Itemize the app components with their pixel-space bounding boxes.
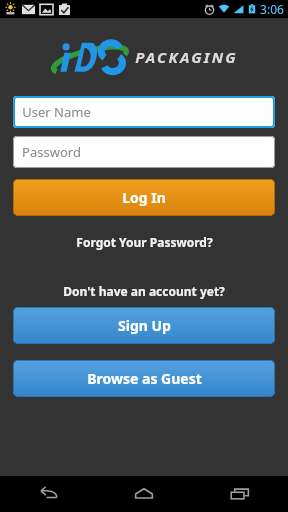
staticText: PACKAGING bbox=[135, 47, 238, 67]
button[interactable]: Don't have an account yet? bbox=[0, 283, 288, 299]
button[interactable]: Home bbox=[96, 476, 192, 512]
staticText: Password bbox=[22, 143, 81, 161]
staticText: User Name bbox=[22, 103, 91, 121]
button[interactable]: Recent apps bbox=[192, 476, 288, 512]
staticText: Sign Up bbox=[118, 316, 171, 335]
staticText: 3:06 bbox=[260, 1, 284, 17]
staticText: Don't have an account yet? bbox=[63, 283, 225, 299]
staticText: Log In bbox=[122, 188, 166, 207]
staticText: Browse as Guest bbox=[87, 369, 202, 388]
button[interactable]: Back bbox=[0, 476, 96, 512]
button[interactable]: Browse as Guest bbox=[13, 360, 275, 397]
button[interactable]: Password bbox=[13, 136, 275, 168]
button[interactable]: Forgot Your Password? bbox=[0, 234, 288, 250]
button[interactable]: User Name bbox=[13, 96, 275, 128]
staticText: Forgot Your Password? bbox=[76, 234, 213, 250]
button[interactable]: Log In bbox=[13, 179, 275, 216]
button[interactable]: Sign Up bbox=[13, 307, 275, 344]
